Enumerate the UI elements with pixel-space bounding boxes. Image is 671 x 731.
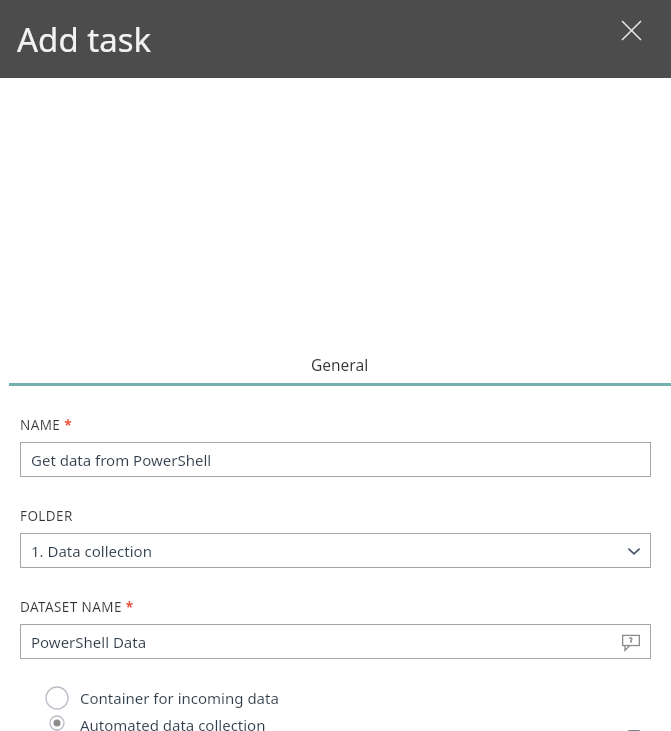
staticText: Automated data collection bbox=[80, 715, 266, 731]
button[interactable]: 1. Data collection bbox=[20, 533, 651, 568]
staticText: General bbox=[311, 354, 369, 375]
button[interactable]: Automated data collection bbox=[20, 715, 651, 731]
staticText: DATASET NAME * bbox=[20, 598, 134, 616]
button[interactable]: PowerShell Data bbox=[20, 624, 651, 659]
button[interactable]: General bbox=[300, 350, 380, 379]
staticText: Container for incoming data bbox=[80, 688, 279, 708]
other: Help bbox=[620, 631, 642, 653]
button[interactable]: Get data from PowerShell bbox=[20, 442, 651, 477]
button[interactable]: Close bbox=[605, 4, 657, 56]
staticText: PowerShell Data bbox=[31, 632, 620, 652]
staticText: Add task bbox=[17, 17, 152, 62]
staticText: 1. Data collection bbox=[31, 541, 626, 561]
staticText: NAME * bbox=[20, 416, 72, 434]
button[interactable]: Container for incoming data bbox=[20, 680, 651, 715]
staticText: Get data from PowerShell bbox=[31, 450, 642, 470]
staticText: FOLDER bbox=[20, 507, 73, 525]
